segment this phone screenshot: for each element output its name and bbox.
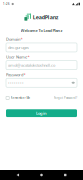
button[interactable]: Login — [6, 109, 77, 117]
button[interactable]: Home — [35, 170, 47, 180]
staticText: 1:26 — [3, 2, 10, 6]
button[interactable]: Back — [12, 170, 24, 180]
staticText: * — [28, 54, 30, 60]
staticText: Domain — [6, 37, 20, 42]
button[interactable]: Forgot Password? — [54, 96, 77, 100]
staticText: Login — [36, 110, 47, 116]
staticText: LeadPlanz — [33, 14, 59, 21]
staticText: amol@acatalokstoshnell.co — [8, 62, 55, 68]
button[interactable]: Recent apps — [59, 170, 71, 180]
staticText: * — [24, 72, 26, 77]
staticText: * — [21, 37, 23, 42]
staticText: Password — [6, 72, 23, 77]
button[interactable]: Remember Me — [6, 96, 30, 100]
staticText: dev.gurugas — [8, 45, 29, 50]
staticText: Forgot Password? — [54, 96, 77, 100]
staticText: Remember Me — [10, 96, 30, 100]
staticText: User Name — [6, 54, 27, 60]
staticText: •••••••• — [8, 80, 24, 85]
staticText: Welcome To LeadPlanz — [20, 28, 62, 33]
